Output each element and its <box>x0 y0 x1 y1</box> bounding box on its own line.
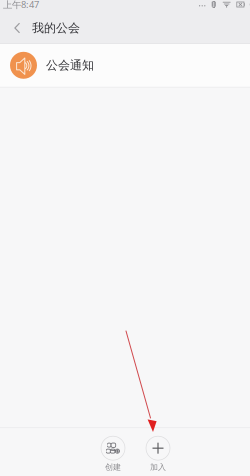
button[interactable]: 创建 <box>93 436 133 472</box>
button[interactable]: 公会通知 <box>0 44 250 87</box>
staticText: 创建 <box>105 462 121 472</box>
staticText: 上午8:47 <box>3 0 39 11</box>
button[interactable]: Back <box>5 15 29 41</box>
staticText: 加入 <box>150 462 166 472</box>
staticText: 我的公会 <box>32 21 80 35</box>
button[interactable]: 加入 <box>138 436 178 472</box>
staticText: 公会通知 <box>46 58 94 73</box>
